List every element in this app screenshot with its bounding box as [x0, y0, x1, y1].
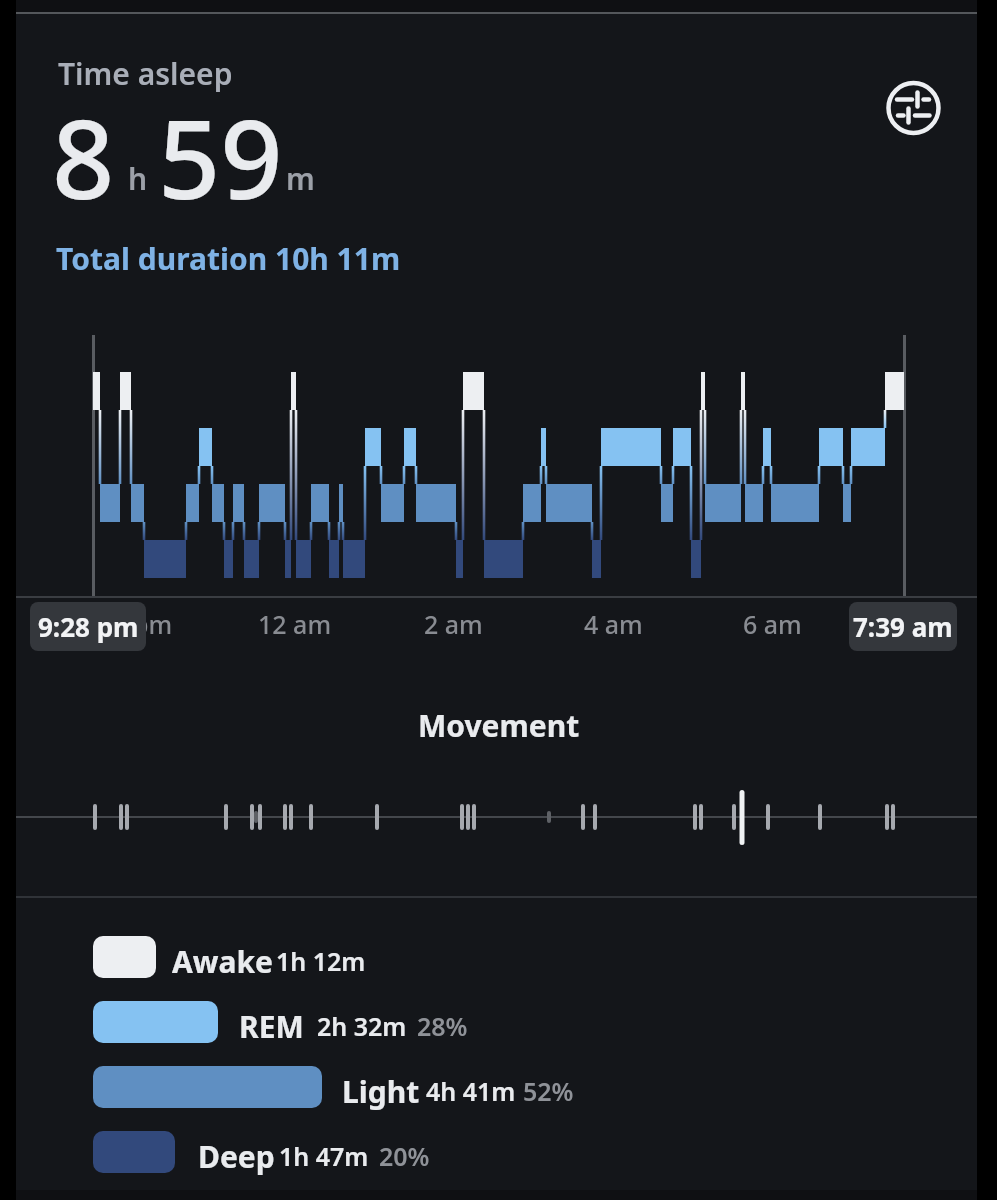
button[interactable] — [93, 936, 156, 978]
staticText: 2h 32m — [317, 1009, 407, 1043]
staticText: 9:28 pm — [38, 609, 139, 644]
button[interactable] — [93, 1001, 218, 1043]
staticText: Time asleep — [58, 53, 233, 94]
staticText: 1h 12m — [276, 944, 366, 978]
staticText: 59 — [158, 82, 283, 230]
staticText: 10 pm — [98, 607, 173, 641]
button[interactable]: 9:28 pm — [30, 602, 146, 651]
staticText: 1h 47m — [279, 1139, 369, 1173]
staticText: Awake — [172, 941, 273, 982]
staticText: 6 am — [743, 607, 802, 641]
staticText: 20% — [379, 1139, 430, 1173]
button[interactable] — [93, 1066, 322, 1108]
staticText: 4 am — [584, 607, 643, 641]
staticText: 8 — [52, 82, 115, 230]
staticText: 2 am — [424, 607, 483, 641]
staticText: REM — [239, 1006, 304, 1047]
button[interactable]: 7:39 am — [849, 602, 957, 651]
button[interactable] — [879, 74, 947, 142]
staticText: 52% — [523, 1074, 574, 1108]
staticText: 7:39 am — [853, 609, 953, 644]
staticText: Total duration 10h 11m — [56, 238, 401, 279]
staticText: 28% — [417, 1009, 468, 1043]
staticText: m — [286, 158, 315, 199]
staticText: Movement — [418, 705, 580, 746]
button[interactable] — [93, 1131, 175, 1173]
staticText: Deep — [198, 1136, 275, 1177]
staticText: 12 am — [258, 607, 332, 641]
staticText: h — [128, 158, 148, 199]
staticText: Light — [342, 1071, 420, 1112]
staticText: 4h 41m — [426, 1074, 516, 1108]
